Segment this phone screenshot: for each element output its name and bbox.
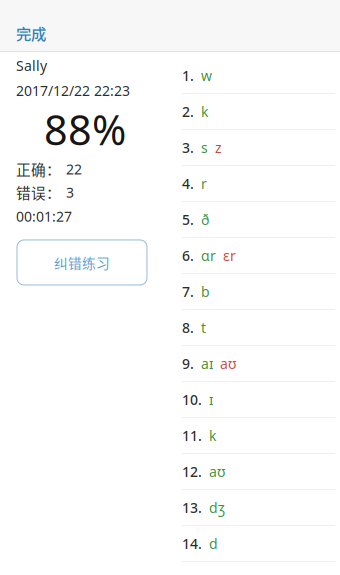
button[interactable]: 10. xyxy=(170,382,340,418)
button[interactable]: 3. xyxy=(170,130,340,166)
staticText: ð xyxy=(201,210,209,229)
staticText: 88% xyxy=(44,101,126,157)
button[interactable]: 7. xyxy=(170,274,340,310)
button[interactable]: 8. xyxy=(170,310,340,346)
staticText: 7. xyxy=(182,282,194,301)
staticText: 12. xyxy=(182,462,202,481)
staticText: 2017/12/22 22:23 xyxy=(16,81,130,100)
staticText: aʊ xyxy=(209,462,225,481)
staticText: b xyxy=(201,282,210,301)
staticText: 纠错练习 xyxy=(54,252,110,272)
button[interactable]: 1. xyxy=(170,58,340,94)
staticText: 3 xyxy=(66,183,74,202)
staticText: k xyxy=(201,102,208,121)
staticText: 9. xyxy=(182,354,194,373)
staticText: t xyxy=(201,318,206,337)
staticText: z xyxy=(215,138,222,157)
staticText: 1. xyxy=(182,66,194,85)
staticText: aɪ xyxy=(201,354,213,373)
button[interactable]: 12. xyxy=(170,454,340,490)
staticText: 6. xyxy=(182,246,194,265)
button[interactable]: 14. xyxy=(170,526,340,562)
staticText: d xyxy=(209,534,218,553)
staticText: 22 xyxy=(66,159,82,179)
button[interactable]: 完成 xyxy=(0,0,60,53)
staticText: k xyxy=(209,426,216,445)
staticText: 5. xyxy=(182,210,194,229)
staticText: 14. xyxy=(182,534,202,553)
staticText: ɛr xyxy=(223,246,236,265)
button[interactable]: 2. xyxy=(170,94,340,130)
staticText: 4. xyxy=(182,174,194,193)
staticText: 8. xyxy=(182,318,194,337)
staticText: aʊ xyxy=(220,354,236,373)
button[interactable]: 11. xyxy=(170,418,340,454)
staticText: 10. xyxy=(182,390,202,409)
staticText: 00:01:27 xyxy=(16,207,72,226)
staticText: ɑr xyxy=(201,246,216,265)
button[interactable]: 13. xyxy=(170,490,340,526)
staticText: 完成 xyxy=(16,22,46,44)
staticText: Sally xyxy=(16,56,47,75)
staticText: 2. xyxy=(182,102,194,121)
button[interactable]: 4. xyxy=(170,166,340,202)
staticText: r xyxy=(201,174,207,193)
staticText: 11. xyxy=(182,426,202,445)
staticText: 错误： xyxy=(16,182,61,203)
staticText: s xyxy=(201,138,208,157)
button[interactable]: 5. xyxy=(170,202,340,238)
staticText: ɪ xyxy=(209,390,213,409)
staticText: 正确： xyxy=(16,158,61,180)
button[interactable]: 9. xyxy=(170,346,340,382)
staticText: 13. xyxy=(182,498,202,517)
staticText: dʒ xyxy=(209,498,225,517)
button[interactable]: 纠错练习 xyxy=(17,240,147,285)
button[interactable]: 6. xyxy=(170,238,340,274)
staticText: 3. xyxy=(182,138,194,157)
staticText: w xyxy=(201,66,212,85)
